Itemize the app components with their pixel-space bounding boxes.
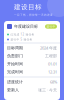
staticText: 年度建设目标 [14, 24, 38, 29]
staticText: 12-31 [48, 69, 57, 75]
staticText: 建设目标 [14, 3, 42, 11]
button[interactable]: 进度统计 [4, 78, 60, 86]
staticText: 一目了然，把控每一天的进度 [14, 13, 53, 16]
staticText: 目标周期 [7, 45, 23, 50]
staticText: 开始时间 [7, 61, 23, 66]
staticText: 张三 · 今天 [38, 87, 57, 93]
button[interactable]: 负责部门 [4, 52, 60, 60]
staticText: 已完成 12 项任务 [11, 33, 35, 36]
staticText: 进行中 [46, 25, 55, 28]
staticText: 68% [50, 79, 57, 85]
staticText: 进行中 5 项任务 [11, 38, 33, 41]
button[interactable]: 开始时间 [4, 60, 60, 68]
button[interactable]: 完成时间 [4, 68, 60, 76]
staticText: 01-01 [48, 61, 57, 67]
button[interactable]: 目标周期 [4, 44, 60, 52]
staticText: 负责部门 [7, 53, 23, 58]
staticText: 进度统计 [7, 79, 23, 84]
staticText: 完成时间 [7, 69, 23, 74]
staticText: 工程部 [45, 53, 57, 58]
staticText: 更新人 [7, 87, 19, 92]
button[interactable]: 更新人 [4, 86, 60, 94]
staticText: 2024 年度 [40, 45, 57, 51]
